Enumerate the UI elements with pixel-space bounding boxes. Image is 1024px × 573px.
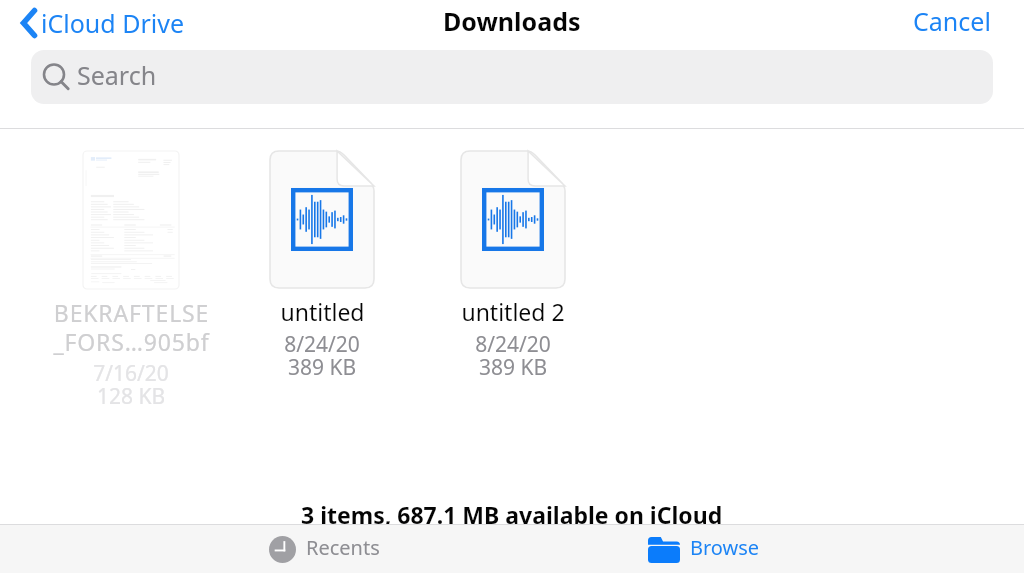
staticText: 8/24/20 389 KB — [475, 330, 551, 381]
button[interactable]: untitled — [227, 151, 417, 381]
staticText: untitled 2 — [461, 296, 565, 327]
staticText: 3 items, 687.1 MB available on iCloud — [301, 499, 723, 530]
staticText: Downloads — [443, 4, 581, 38]
staticText: Recents — [306, 534, 380, 561]
staticText: Cancel — [913, 4, 991, 38]
staticText: iCloud Drive — [41, 6, 184, 40]
staticText: Search — [77, 58, 157, 92]
staticText: 7/16/20 128 KB — [93, 359, 169, 410]
button[interactable]: Search — [31, 50, 993, 104]
button[interactable]: Browse — [632, 527, 776, 572]
staticText: untitled — [280, 296, 365, 327]
button[interactable]: Recents — [253, 527, 396, 572]
staticText: BEKRAFTELSE _FORS…905bf — [53, 297, 210, 358]
button[interactable]: untitled 2 — [418, 151, 608, 381]
staticText: Browse — [690, 534, 760, 561]
button[interactable]: BEKRAFTELSE — [36, 151, 226, 410]
staticText: 8/24/20 389 KB — [284, 330, 360, 381]
button[interactable]: Cancel — [893, 2, 1024, 46]
button[interactable]: Back to iCloud Drive — [16, 4, 196, 44]
